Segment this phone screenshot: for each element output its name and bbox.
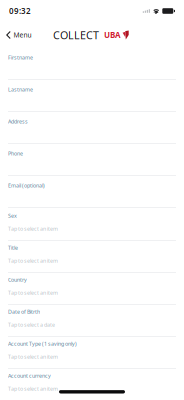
button[interactable]: Lastname: [0, 80, 184, 112]
button[interactable]: Date of Bitrth: [0, 304, 184, 336]
staticText: Date of Bitrth: [8, 308, 40, 315]
button[interactable]: Title: [0, 240, 184, 272]
staticText: Title: [8, 244, 18, 251]
staticText: UBA: [104, 30, 121, 40]
button[interactable]: Account Type (1 saving only): [0, 336, 184, 368]
button[interactable]: Address: [0, 112, 184, 144]
button[interactable]: Phone: [0, 144, 184, 176]
button[interactable]: Email (optional): [0, 176, 184, 208]
staticText: Tap to select an item: [8, 353, 58, 360]
staticText: Tap to select an item: [8, 385, 58, 392]
button[interactable]: Menu: [2, 26, 35, 44]
staticText: Phone: [8, 150, 23, 157]
staticText: Account currency: [8, 372, 51, 379]
staticText: Country: [8, 276, 27, 283]
button[interactable]: Firstname: [0, 48, 184, 80]
staticText: 09:32: [9, 6, 31, 16]
button[interactable]: UBA: [104, 26, 129, 44]
staticText: Tap to select a date: [8, 321, 55, 328]
staticText: Address: [8, 118, 28, 125]
button[interactable]: Country: [0, 272, 184, 304]
staticText: Firstname: [8, 54, 33, 61]
staticText: Tap to select an item: [8, 257, 58, 264]
staticText: Account Type (1 saving only): [8, 340, 77, 347]
staticText: COLLECT: [53, 28, 99, 42]
staticText: Tap to select an item: [8, 225, 58, 232]
button[interactable]: Account currency: [0, 368, 184, 400]
staticText: Email (optional): [8, 182, 45, 189]
button[interactable]: Sex: [0, 208, 184, 240]
staticText: Lastname: [8, 86, 33, 93]
staticText: Sex: [8, 212, 17, 219]
staticText: Menu: [13, 31, 31, 39]
staticText: Tap to select an item: [8, 289, 58, 296]
